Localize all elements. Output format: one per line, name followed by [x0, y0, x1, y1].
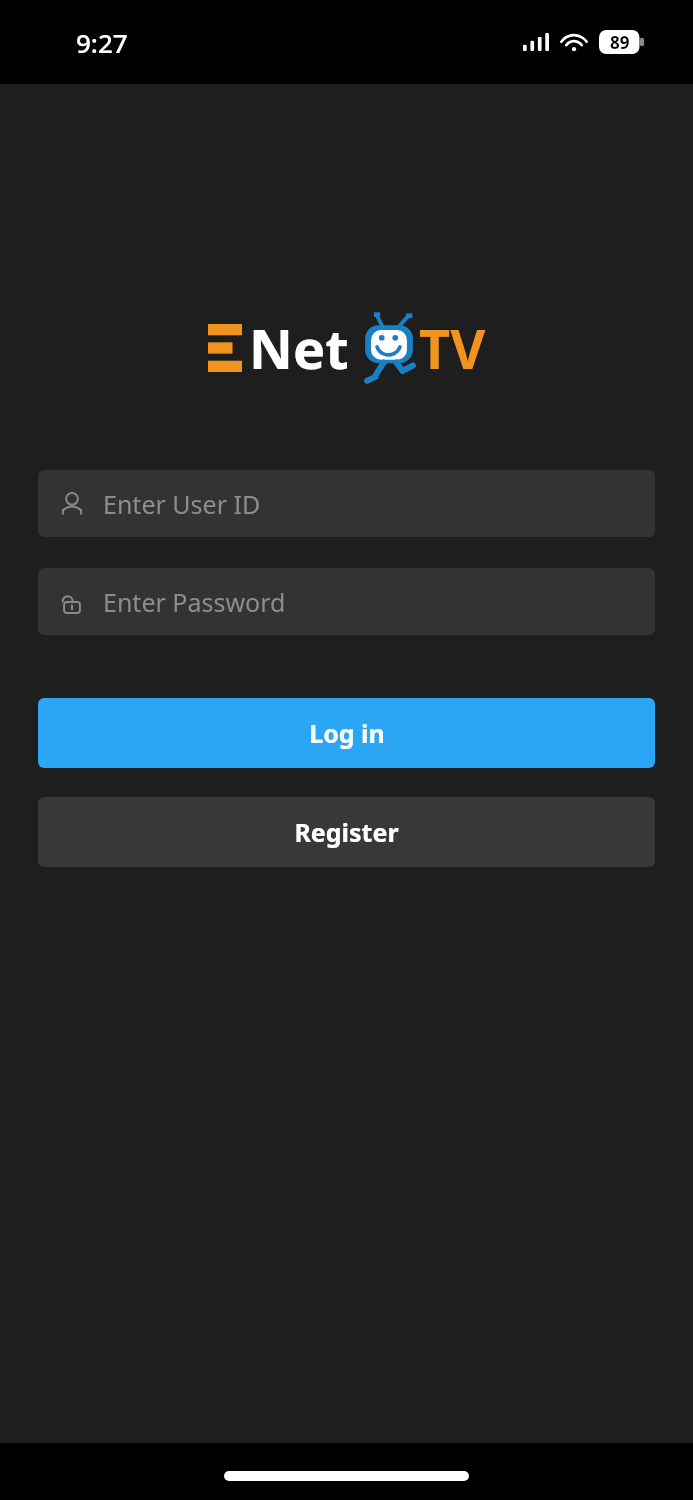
staticText: 89 — [610, 31, 630, 54]
staticText: Enter User ID — [103, 487, 261, 521]
button[interactable]: Enter Password — [38, 568, 655, 635]
button[interactable]: Enter User ID — [38, 470, 655, 537]
staticText: Register — [294, 815, 399, 849]
staticText: 9:27 — [76, 25, 128, 60]
staticText: Net — [249, 311, 349, 385]
button[interactable]: Log in — [38, 698, 655, 768]
staticText: Enter Password — [103, 585, 286, 619]
staticText: TV — [419, 311, 486, 385]
staticText: Log in — [309, 716, 385, 750]
button[interactable]: Register — [38, 797, 655, 867]
